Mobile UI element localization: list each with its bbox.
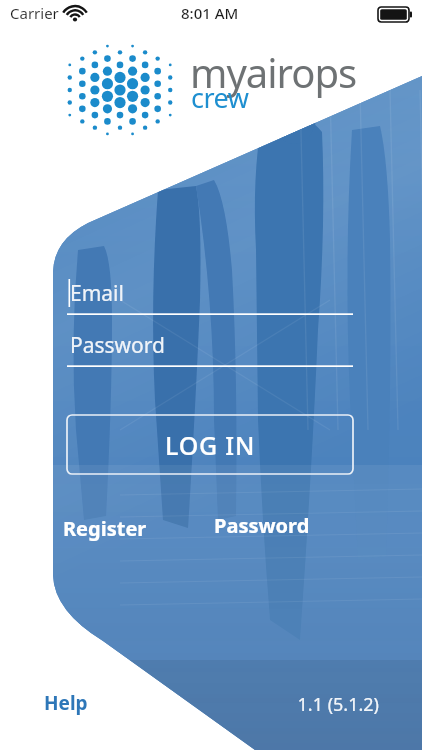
button[interactable]: LOG IN [67,415,353,474]
staticText: myairops [190,45,357,99]
staticText: Password [70,331,165,360]
staticText: Email [70,279,124,308]
staticText: 8:01 AM [181,3,239,23]
button[interactable]: Password [67,327,353,367]
staticText: Carrier [10,3,59,23]
staticText: Register [63,515,147,542]
staticText: Password Reset [214,512,346,544]
button[interactable]: Help [44,688,98,718]
staticText: LOG IN [165,428,256,462]
staticText: Help [44,690,88,716]
staticText: crew [191,79,249,116]
button[interactable]: Register [59,512,151,544]
staticText: 1.1 (5.1.2) [297,692,379,717]
button[interactable]: Email [67,275,353,315]
button[interactable]: Password Reset [214,512,346,544]
